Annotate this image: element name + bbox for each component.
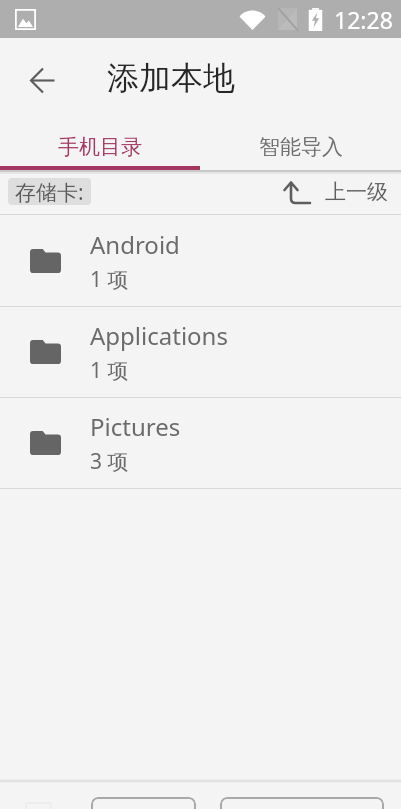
button[interactable]: 取消 bbox=[91, 797, 196, 809]
staticText: 1 项 bbox=[90, 356, 129, 385]
staticText: Pictures bbox=[90, 410, 181, 443]
button[interactable]: 存储卡: bbox=[8, 178, 91, 205]
staticText: 12:28 bbox=[334, 4, 393, 35]
staticText: Android bbox=[90, 228, 180, 261]
staticText: Applications bbox=[90, 319, 228, 352]
staticText: 1 项 bbox=[90, 265, 129, 294]
button[interactable]: 确定 bbox=[220, 797, 384, 809]
button[interactable]: Back bbox=[18, 56, 66, 104]
staticText: 上一级 bbox=[325, 179, 388, 205]
button[interactable]: Select all bbox=[25, 802, 52, 809]
button[interactable]: 智能导入 bbox=[200, 124, 401, 166]
staticText: 3 项 bbox=[90, 447, 129, 476]
staticText: 添加本地 bbox=[107, 58, 235, 98]
button[interactable]: 手机目录 bbox=[0, 124, 200, 166]
button[interactable]: 上一级 bbox=[281, 179, 388, 205]
button[interactable]: Pictures bbox=[0, 398, 401, 489]
staticText: 智能导入 bbox=[259, 134, 343, 160]
button[interactable]: Applications bbox=[0, 307, 401, 398]
button[interactable]: Android bbox=[0, 215, 401, 307]
staticText: 手机目录 bbox=[58, 134, 142, 160]
staticText: 存储卡: bbox=[15, 178, 84, 205]
